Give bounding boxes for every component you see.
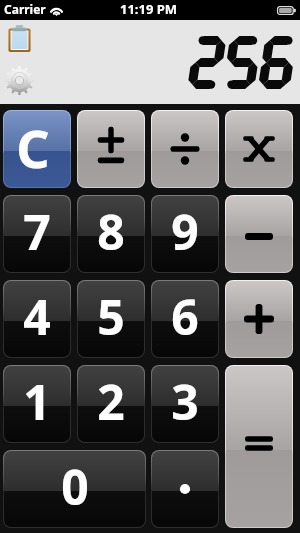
button[interactable]: Plus minus bbox=[77, 110, 145, 188]
button[interactable]: Plus bbox=[225, 280, 293, 358]
staticText: 0 bbox=[61, 454, 89, 519]
staticText: 11:19 PM bbox=[120, 0, 178, 18]
staticText: 8 bbox=[97, 199, 125, 264]
button[interactable]: 4 bbox=[3, 280, 71, 358]
button[interactable]: 7 bbox=[3, 195, 71, 273]
staticText: 3 bbox=[171, 369, 199, 434]
button[interactable]: 1 bbox=[3, 365, 71, 443]
staticText: 9 bbox=[171, 199, 199, 264]
staticText: Carrier bbox=[4, 1, 46, 17]
button[interactable]: Equals bbox=[225, 365, 293, 528]
button[interactable]: 2 bbox=[77, 365, 145, 443]
staticText: 4 bbox=[23, 284, 51, 349]
button[interactable]: C bbox=[3, 110, 71, 188]
button[interactable]: 6 bbox=[151, 280, 219, 358]
button[interactable]: Multiply bbox=[225, 110, 293, 188]
button[interactable]: 3 bbox=[151, 365, 219, 443]
button[interactable]: 0 bbox=[3, 450, 146, 528]
staticText: C bbox=[16, 112, 50, 183]
button[interactable]: 9 bbox=[151, 195, 219, 273]
button[interactable]: Minus bbox=[225, 195, 293, 273]
staticText: 7 bbox=[23, 199, 51, 264]
button[interactable]: Clipboard bbox=[8, 25, 31, 52]
button[interactable]: Divide bbox=[151, 110, 219, 188]
button[interactable]: 8 bbox=[77, 195, 145, 273]
staticText: 2 bbox=[97, 369, 125, 434]
staticText: 5 bbox=[97, 284, 125, 349]
button[interactable]: Settings bbox=[5, 66, 34, 95]
button[interactable]: Decimal point bbox=[151, 450, 219, 528]
staticText: 1 bbox=[23, 369, 51, 434]
staticText: 6 bbox=[171, 284, 199, 349]
button[interactable]: 5 bbox=[77, 280, 145, 358]
